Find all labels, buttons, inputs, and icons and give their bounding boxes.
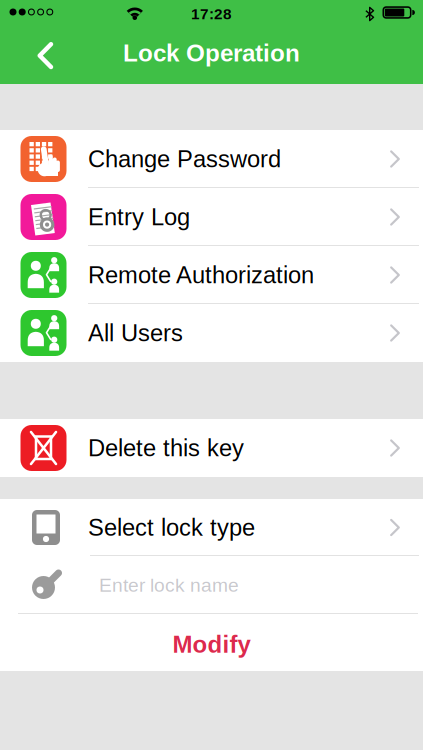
staticText: Select lock type — [88, 514, 255, 541]
button[interactable]: All Users — [0, 304, 423, 362]
button[interactable]: Select lock type — [0, 499, 423, 556]
button[interactable]: Delete this key — [0, 419, 423, 477]
staticText: Change Password — [88, 146, 281, 172]
button[interactable]: Modify — [0, 614, 423, 671]
staticText: All Users — [88, 320, 183, 346]
button[interactable]: Back — [0, 31, 53, 82]
staticText: Remote Authorization — [88, 262, 314, 288]
button[interactable]: Change Password — [0, 130, 423, 188]
button[interactable]: Enter lock name — [0, 556, 423, 614]
button[interactable]: Entry Log — [0, 188, 423, 246]
staticText: Entry Log — [88, 204, 190, 230]
button[interactable]: Remote Authorization — [0, 246, 423, 304]
staticText: Delete this key — [88, 435, 244, 461]
staticText: Lock Operation — [123, 39, 300, 66]
staticText: Enter lock name — [99, 574, 239, 596]
staticText: 17:28 — [191, 5, 232, 22]
staticText: Modify — [172, 631, 250, 658]
